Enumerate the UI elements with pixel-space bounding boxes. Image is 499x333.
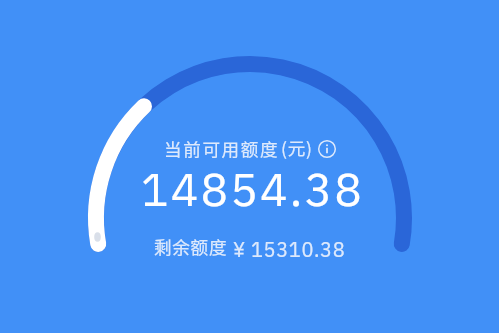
staticText: 当前可用额度 bbox=[164, 136, 280, 161]
other: Info bbox=[318, 140, 336, 158]
staticText: ¥ 15310.38 bbox=[233, 236, 346, 262]
staticText: 剩余额度 bbox=[154, 234, 228, 259]
staticText: 14854.38 bbox=[141, 159, 364, 219]
staticText: (元) bbox=[281, 135, 313, 160]
button[interactable]: 当前可用额度 bbox=[164, 136, 336, 161]
